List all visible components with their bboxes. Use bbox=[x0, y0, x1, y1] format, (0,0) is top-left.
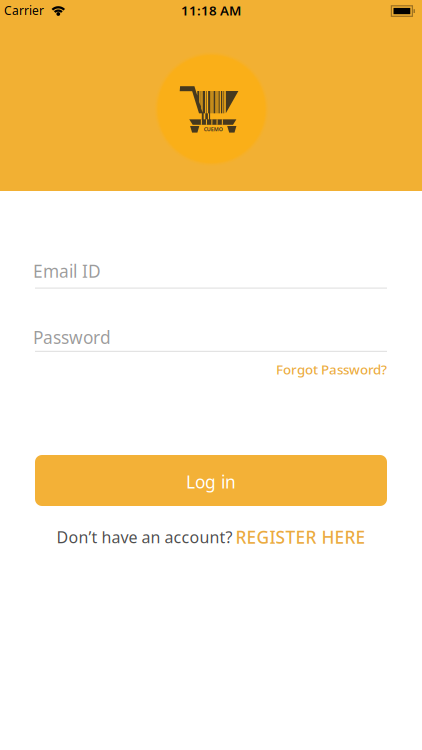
staticText: Don’t have an account? bbox=[56, 526, 232, 548]
staticText: Forgot Password? bbox=[276, 360, 387, 378]
staticText: Carrier bbox=[4, 2, 44, 18]
button[interactable]: Password bbox=[0, 325, 422, 352]
button[interactable]: Email ID bbox=[0, 259, 422, 289]
staticText: REGISTER HERE bbox=[235, 525, 365, 548]
button[interactable]: Forgot Password? bbox=[276, 360, 387, 378]
staticText: 11:18 AM bbox=[181, 1, 241, 19]
button[interactable]: REGISTER HERE bbox=[235, 525, 365, 548]
staticText: CUEMO bbox=[204, 126, 223, 133]
staticText: Password bbox=[33, 326, 111, 349]
button[interactable]: Log in bbox=[35, 455, 387, 506]
staticText: Email ID bbox=[33, 259, 101, 282]
staticText: Log in bbox=[186, 470, 236, 493]
